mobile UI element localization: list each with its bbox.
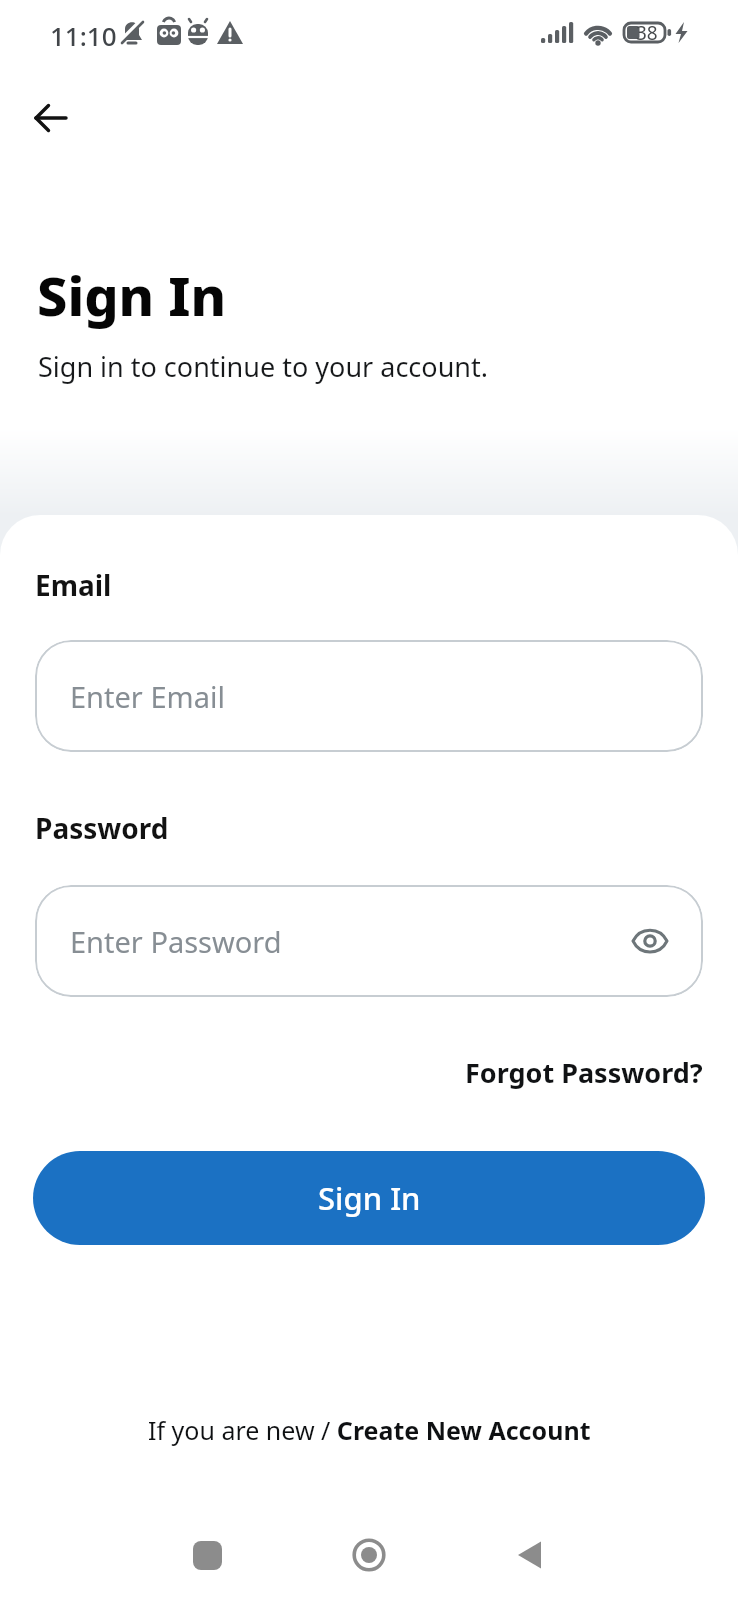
staticText: Sign In bbox=[318, 1177, 421, 1219]
button[interactable] bbox=[24, 90, 80, 146]
button[interactable]: Forgot Password? bbox=[383, 1048, 703, 1096]
button[interactable] bbox=[630, 921, 670, 961]
button[interactable] bbox=[345, 1531, 393, 1579]
staticText: Enter Password bbox=[70, 922, 282, 961]
staticText: If you are new / Create New Account bbox=[148, 1413, 591, 1447]
staticText: Sign In bbox=[37, 258, 227, 332]
staticText: Email bbox=[35, 566, 112, 604]
staticText: Forgot Password? bbox=[465, 1054, 703, 1091]
staticText: 11:10 bbox=[50, 18, 117, 53]
staticText: Sign in to continue to your account. bbox=[38, 348, 489, 385]
button[interactable] bbox=[506, 1531, 554, 1579]
button[interactable]: Enter Password bbox=[35, 885, 703, 997]
staticText: 38 bbox=[636, 20, 658, 46]
staticText: Enter Email bbox=[70, 677, 225, 716]
button[interactable]: Sign In bbox=[33, 1151, 705, 1245]
staticText: Password bbox=[35, 809, 169, 847]
button[interactable] bbox=[183, 1531, 231, 1579]
button[interactable]: If you are new / Create New Account bbox=[0, 1402, 738, 1458]
button[interactable]: Enter Email bbox=[35, 640, 703, 752]
